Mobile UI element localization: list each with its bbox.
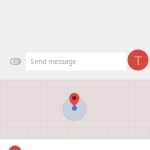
button[interactable]: Send message bbox=[26, 52, 126, 70]
staticText: Send message bbox=[31, 57, 77, 66]
button[interactable]: Send bbox=[127, 49, 148, 70]
button[interactable]: Attach bbox=[3, 50, 27, 72]
staticText: T bbox=[134, 51, 141, 69]
